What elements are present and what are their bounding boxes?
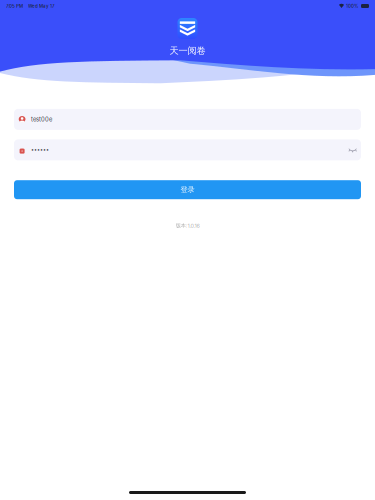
button[interactable]: Show password <box>349 148 356 152</box>
staticText: test00e <box>31 116 52 123</box>
staticText: 版本:1.0.16 <box>175 222 199 229</box>
staticText: Wed May 17 <box>28 3 55 9</box>
staticText: 100% <box>346 3 359 9</box>
button[interactable]: 登录 <box>14 180 361 199</box>
staticText: 7:05 PM <box>6 3 23 9</box>
staticText: •••••• <box>31 147 49 153</box>
staticText: 天一阅卷 <box>169 45 205 57</box>
staticText: 登录 <box>180 185 194 194</box>
